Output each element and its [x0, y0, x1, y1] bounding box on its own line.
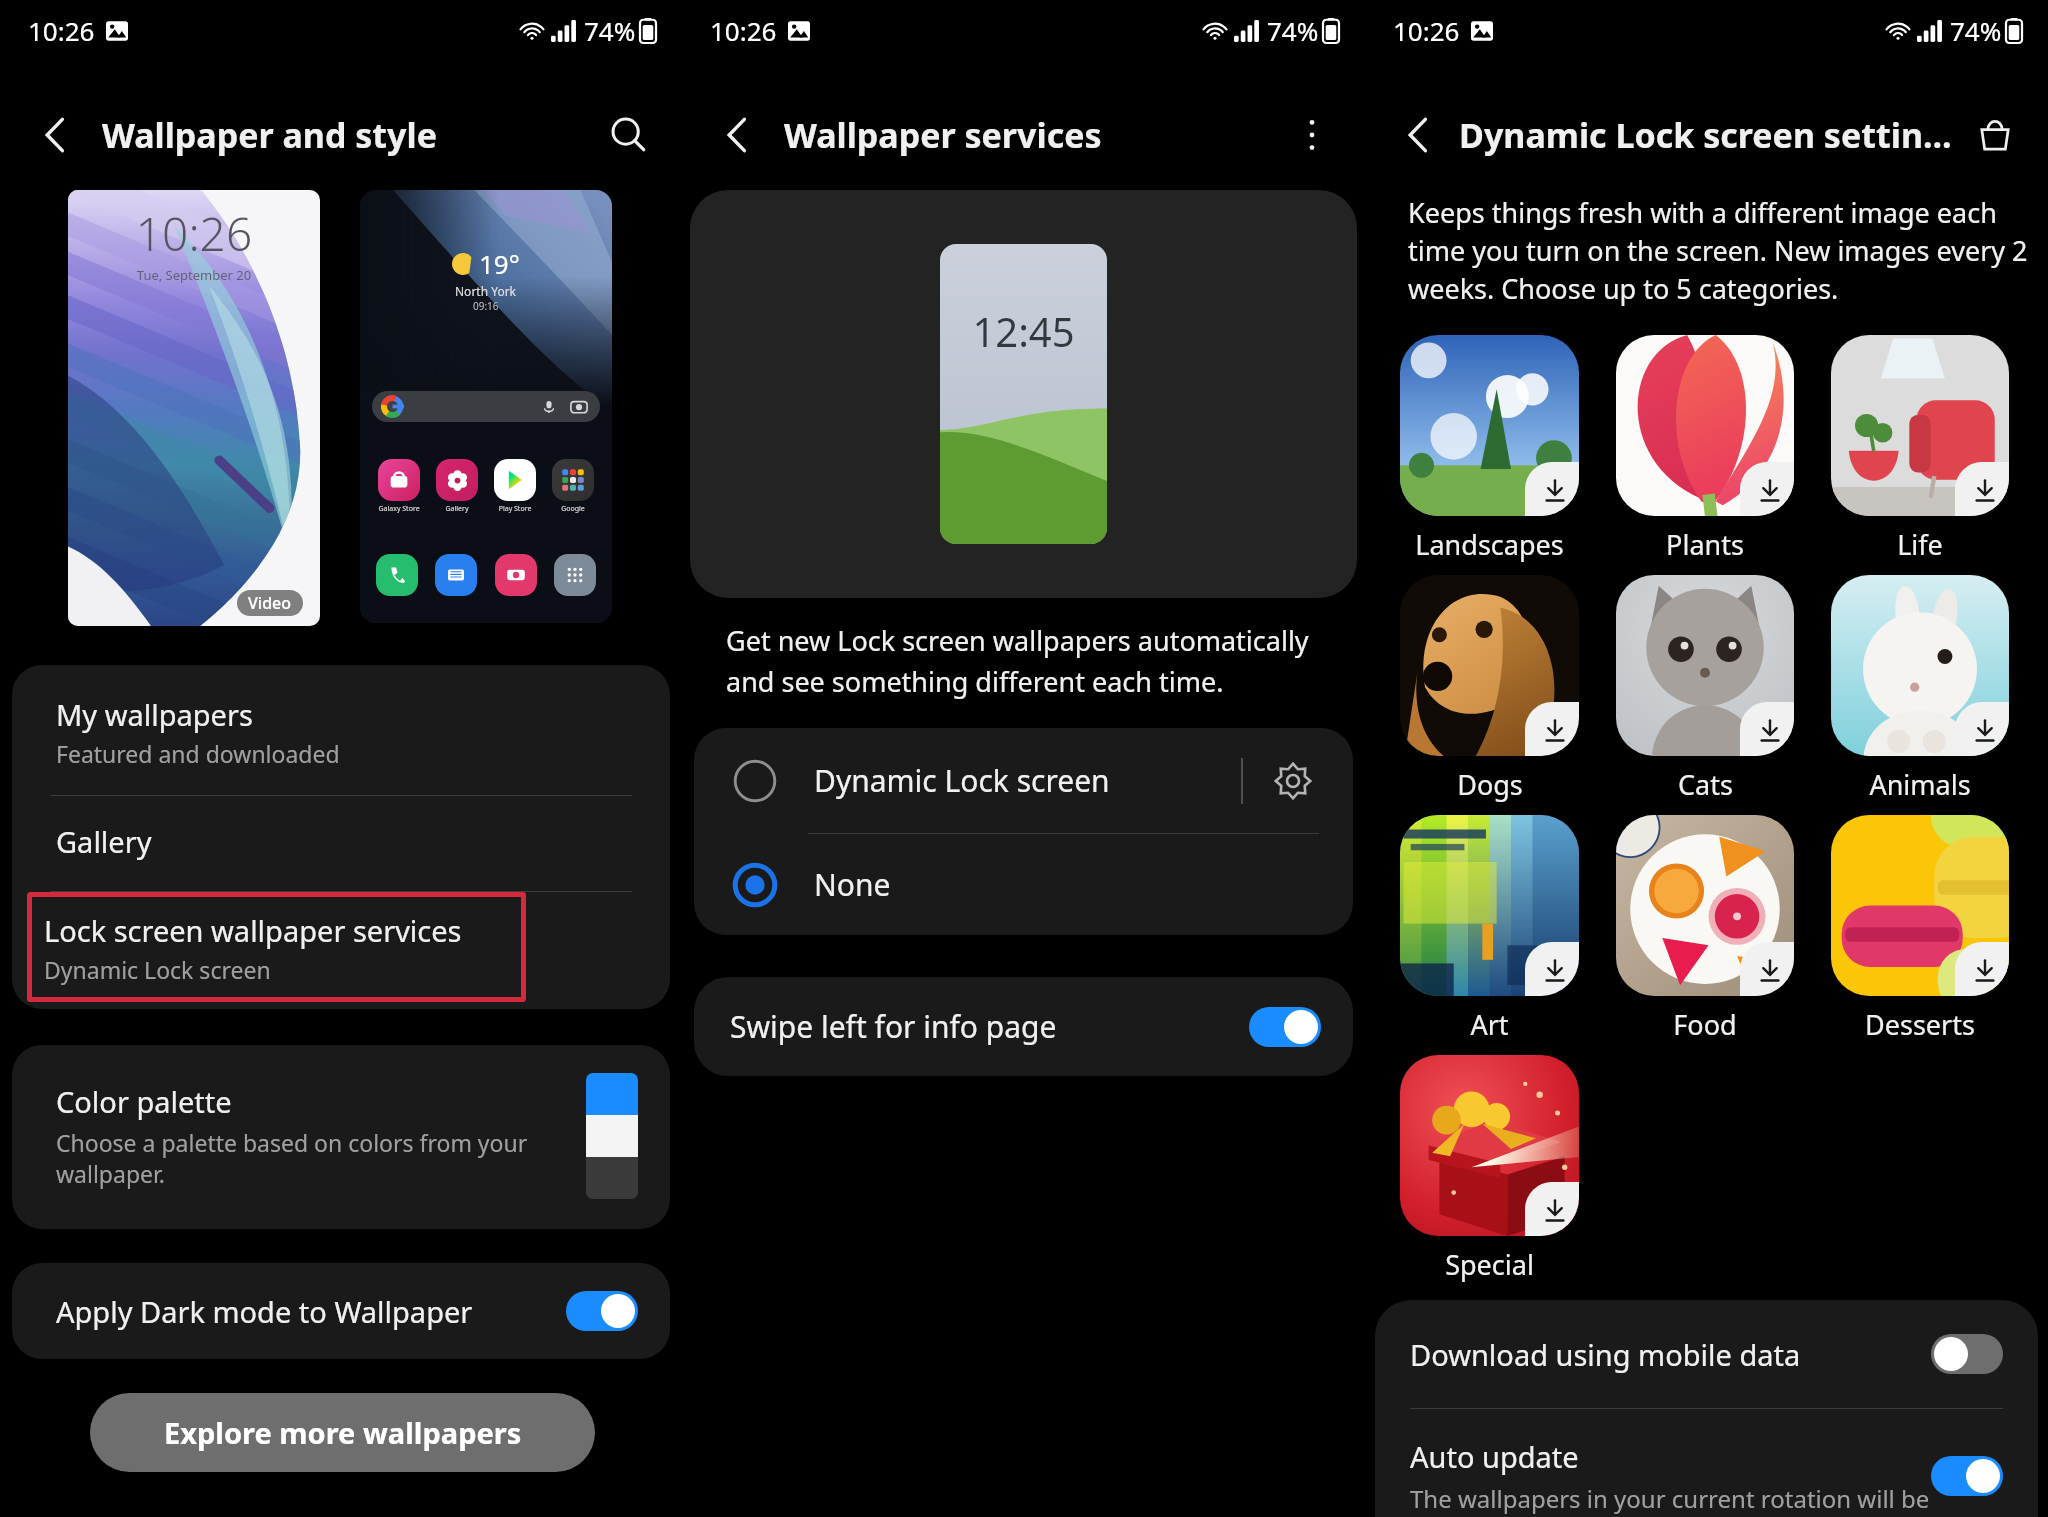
staticText: 19° [479, 246, 520, 281]
staticText: None [814, 864, 1321, 905]
staticText: 10:26 [28, 13, 95, 48]
button[interactable]: Gallery [12, 796, 670, 891]
staticText: Download using mobile data [1410, 1335, 1931, 1374]
button[interactable]: Cats [1616, 575, 1794, 756]
button[interactable]: Back [1393, 110, 1443, 160]
staticText: Keeps things fresh with a different imag… [1408, 194, 2042, 307]
staticText: My wallpapers [56, 695, 253, 734]
staticText: North York [455, 283, 517, 299]
button[interactable]: Color palette [12, 1045, 670, 1229]
staticText: 12:45 [940, 304, 1107, 358]
staticText: Wallpaper and style [102, 112, 598, 158]
button[interactable]: Back [712, 110, 762, 160]
button[interactable]: Explore more wallpapers [90, 1393, 595, 1472]
button[interactable]: Art [1400, 815, 1579, 996]
button[interactable]: Auto update [1375, 1409, 2038, 1517]
button[interactable]: Select [730, 860, 780, 910]
staticText: Life [1897, 526, 1943, 563]
staticText: Apply Dark mode to Wallpaper [56, 1292, 566, 1331]
button[interactable]: Turn off [566, 1291, 638, 1331]
button[interactable]: Turn off [1249, 1007, 1321, 1047]
button[interactable]: Turn on [1931, 1334, 2003, 1374]
staticText: Get new Lock screen wallpapers automatic… [726, 622, 1345, 700]
staticText: Galaxy Store [374, 504, 424, 514]
button[interactable]: Food [1616, 815, 1794, 996]
button[interactable]: Lock screen wallpaper services [27, 892, 526, 1002]
button[interactable]: Apply Dark mode to Wallpaper [12, 1263, 670, 1359]
staticText: Lock screen wallpaper services [44, 911, 462, 950]
staticText: 09:16 [473, 299, 499, 313]
button[interactable]: Desserts [1831, 815, 2009, 996]
button[interactable]: Lock screen wallpaper preview [68, 190, 320, 626]
button[interactable]: More options [1289, 112, 1335, 158]
staticText: Google [548, 504, 598, 514]
button[interactable]: My wallpapers [12, 665, 670, 795]
button[interactable]: Select [694, 834, 1353, 935]
staticText: Food [1673, 1006, 1737, 1043]
button[interactable]: Landscapes [1400, 335, 1579, 516]
staticText: The wallpapers in your current rotation … [1410, 1482, 1930, 1515]
staticText: Wallpaper services [784, 112, 1281, 158]
staticText: Gallery [432, 504, 482, 514]
staticText: Art [1470, 1006, 1509, 1043]
staticText: 74% [584, 13, 636, 48]
button[interactable]: Settings [1265, 753, 1321, 809]
staticText: Cats [1678, 766, 1733, 803]
button[interactable]: Animals [1831, 575, 2009, 756]
button[interactable]: Plants [1616, 335, 1794, 516]
button[interactable]: Turn off [1931, 1456, 2003, 1496]
staticText: Swipe left for info page [730, 1006, 1249, 1047]
button[interactable]: Life [1831, 335, 2009, 516]
staticText: Choose a palette based on colors from yo… [56, 1127, 568, 1190]
staticText: Color palette [56, 1082, 232, 1121]
button[interactable]: Select [694, 728, 1353, 833]
button[interactable]: Download using mobile data [1375, 1300, 2038, 1408]
staticText: Featured and downloaded [56, 738, 340, 769]
staticText: Landscapes [1415, 526, 1564, 563]
button[interactable]: Select [730, 756, 780, 806]
button[interactable]: Search [606, 112, 652, 158]
staticText: 10:26 [68, 202, 320, 265]
staticText: Desserts [1865, 1006, 1975, 1043]
staticText: Dynamic Lock screen [814, 760, 1241, 801]
staticText: Plants [1666, 526, 1744, 563]
button[interactable]: Store [1970, 110, 2020, 160]
staticText: Dynamic Lock screen settin... [1459, 112, 1962, 158]
staticText: Auto update [1410, 1437, 1579, 1476]
staticText: Dogs [1457, 766, 1523, 803]
button[interactable]: Back [30, 110, 80, 160]
button[interactable]: Special [1400, 1055, 1579, 1236]
staticText: Tue, September 20 [68, 266, 320, 284]
staticText: 74% [1267, 13, 1319, 48]
staticText: Video [248, 592, 292, 614]
button[interactable]: Dogs [1400, 575, 1579, 756]
staticText: Gallery [56, 822, 152, 861]
staticText: Dynamic Lock screen [44, 954, 271, 985]
staticText: Explore more wallpapers [164, 1413, 522, 1452]
staticText: Animals [1869, 766, 1971, 803]
button[interactable]: Home screen wallpaper preview [360, 190, 612, 623]
staticText: Play Store [490, 504, 540, 514]
staticText: 74% [1950, 13, 2002, 48]
staticText: 10:26 [710, 13, 777, 48]
staticText: 10:26 [1393, 13, 1460, 48]
button[interactable]: Swipe left for info page [694, 977, 1353, 1076]
staticText: Special [1445, 1246, 1534, 1283]
